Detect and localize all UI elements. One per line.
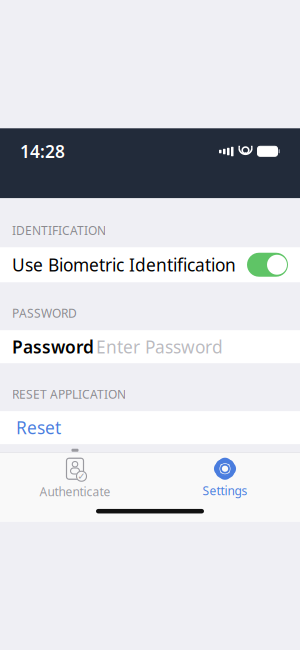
staticText: PASSWORD	[12, 305, 77, 321]
staticText: RESET APPLICATION	[12, 386, 126, 402]
staticText: IDENTIFICATION	[12, 222, 106, 238]
staticText: Reset	[16, 416, 61, 439]
staticText: Use Biometric Identification	[12, 253, 236, 276]
staticText: Password	[12, 335, 94, 358]
staticText: Authenticate	[39, 484, 110, 500]
button[interactable]: Reset	[0, 411, 300, 444]
button[interactable]: Password	[0, 330, 300, 363]
staticText: Enter Password	[96, 335, 223, 358]
staticText: ✓	[77, 471, 85, 481]
button[interactable]: ✓	[0, 452, 150, 502]
button[interactable]: Settings	[150, 453, 300, 501]
staticText: Settings	[202, 483, 247, 499]
button[interactable]: Use Biometric Identification	[0, 247, 300, 282]
staticText: 14:28	[20, 140, 65, 163]
